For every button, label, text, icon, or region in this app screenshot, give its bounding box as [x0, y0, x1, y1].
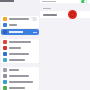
button[interactable]: Do Not Disturb	[1, 51, 39, 57]
button[interactable]: Record	[68, 10, 77, 19]
button[interactable]: General	[1, 67, 39, 73]
button[interactable]: Accessibility	[1, 85, 39, 90]
button[interactable]: Screen Time	[1, 57, 39, 63]
button[interactable]: Display and Brightness	[1, 79, 39, 85]
button[interactable]: Toggle	[30, 17, 37, 21]
button[interactable]: Notifications	[1, 39, 39, 45]
button[interactable]: Sounds	[1, 45, 39, 51]
button[interactable]	[1, 29, 39, 35]
button[interactable]: Control Center	[1, 73, 39, 79]
button[interactable]: Enabled toggle	[81, 0, 87, 3]
button[interactable]: Wi-Fi	[1, 22, 39, 28]
button[interactable]: Airplane mode	[1, 16, 39, 22]
